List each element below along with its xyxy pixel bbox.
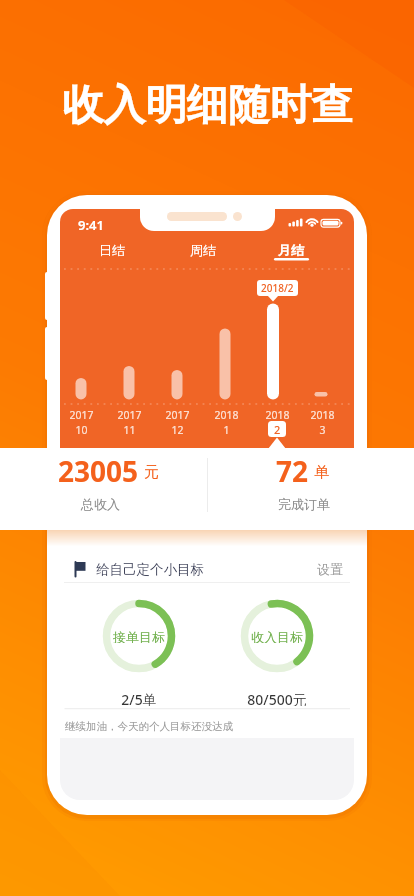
staticText: 80/500元 [247,690,307,706]
button[interactable]: 日结 [82,240,142,260]
staticText: 继续加油，今天的个人目标还没达成 [65,720,233,733]
button[interactable]: 72 [217,452,387,486]
staticText: 给自己定个小目标 [96,561,204,578]
staticText: 总收入 [81,496,120,512]
staticText: 元 [144,463,159,482]
staticText: 11 [123,423,136,437]
button[interactable]: 周结 [173,240,233,260]
staticText: 2018/2 [261,281,294,295]
button[interactable]: 23005 [23,452,193,486]
staticText: 2017 [165,408,190,421]
staticText: 12 [171,423,184,437]
staticText: 10 [75,423,88,437]
staticText: 2018 [265,408,290,421]
staticText: 单 [314,463,329,482]
staticText: 2017 [117,408,142,421]
staticText: 完成订单 [278,496,330,512]
staticText: 72 [276,452,309,486]
staticText: 9:41 [78,216,104,233]
staticText: 日结 [99,242,125,258]
staticText: 2017 [69,408,94,421]
staticText: 23005 [58,452,139,486]
staticText: 1 [223,423,230,437]
staticText: 接单目标 [113,629,165,643]
staticText: 收入明细随时查 [62,79,353,129]
staticText: 收入目标 [251,629,303,643]
staticText: 月结 [278,242,304,258]
staticText: 3 [319,423,326,437]
staticText: 2018 [310,408,335,421]
staticText: 周结 [190,242,216,258]
staticText: 2018 [214,408,239,421]
button[interactable]: 月结 [261,240,321,260]
staticText: 设置 [317,561,343,577]
staticText: 2 [274,422,281,437]
button[interactable]: 设置 [306,560,354,578]
staticText: 2/5单 [121,690,157,706]
